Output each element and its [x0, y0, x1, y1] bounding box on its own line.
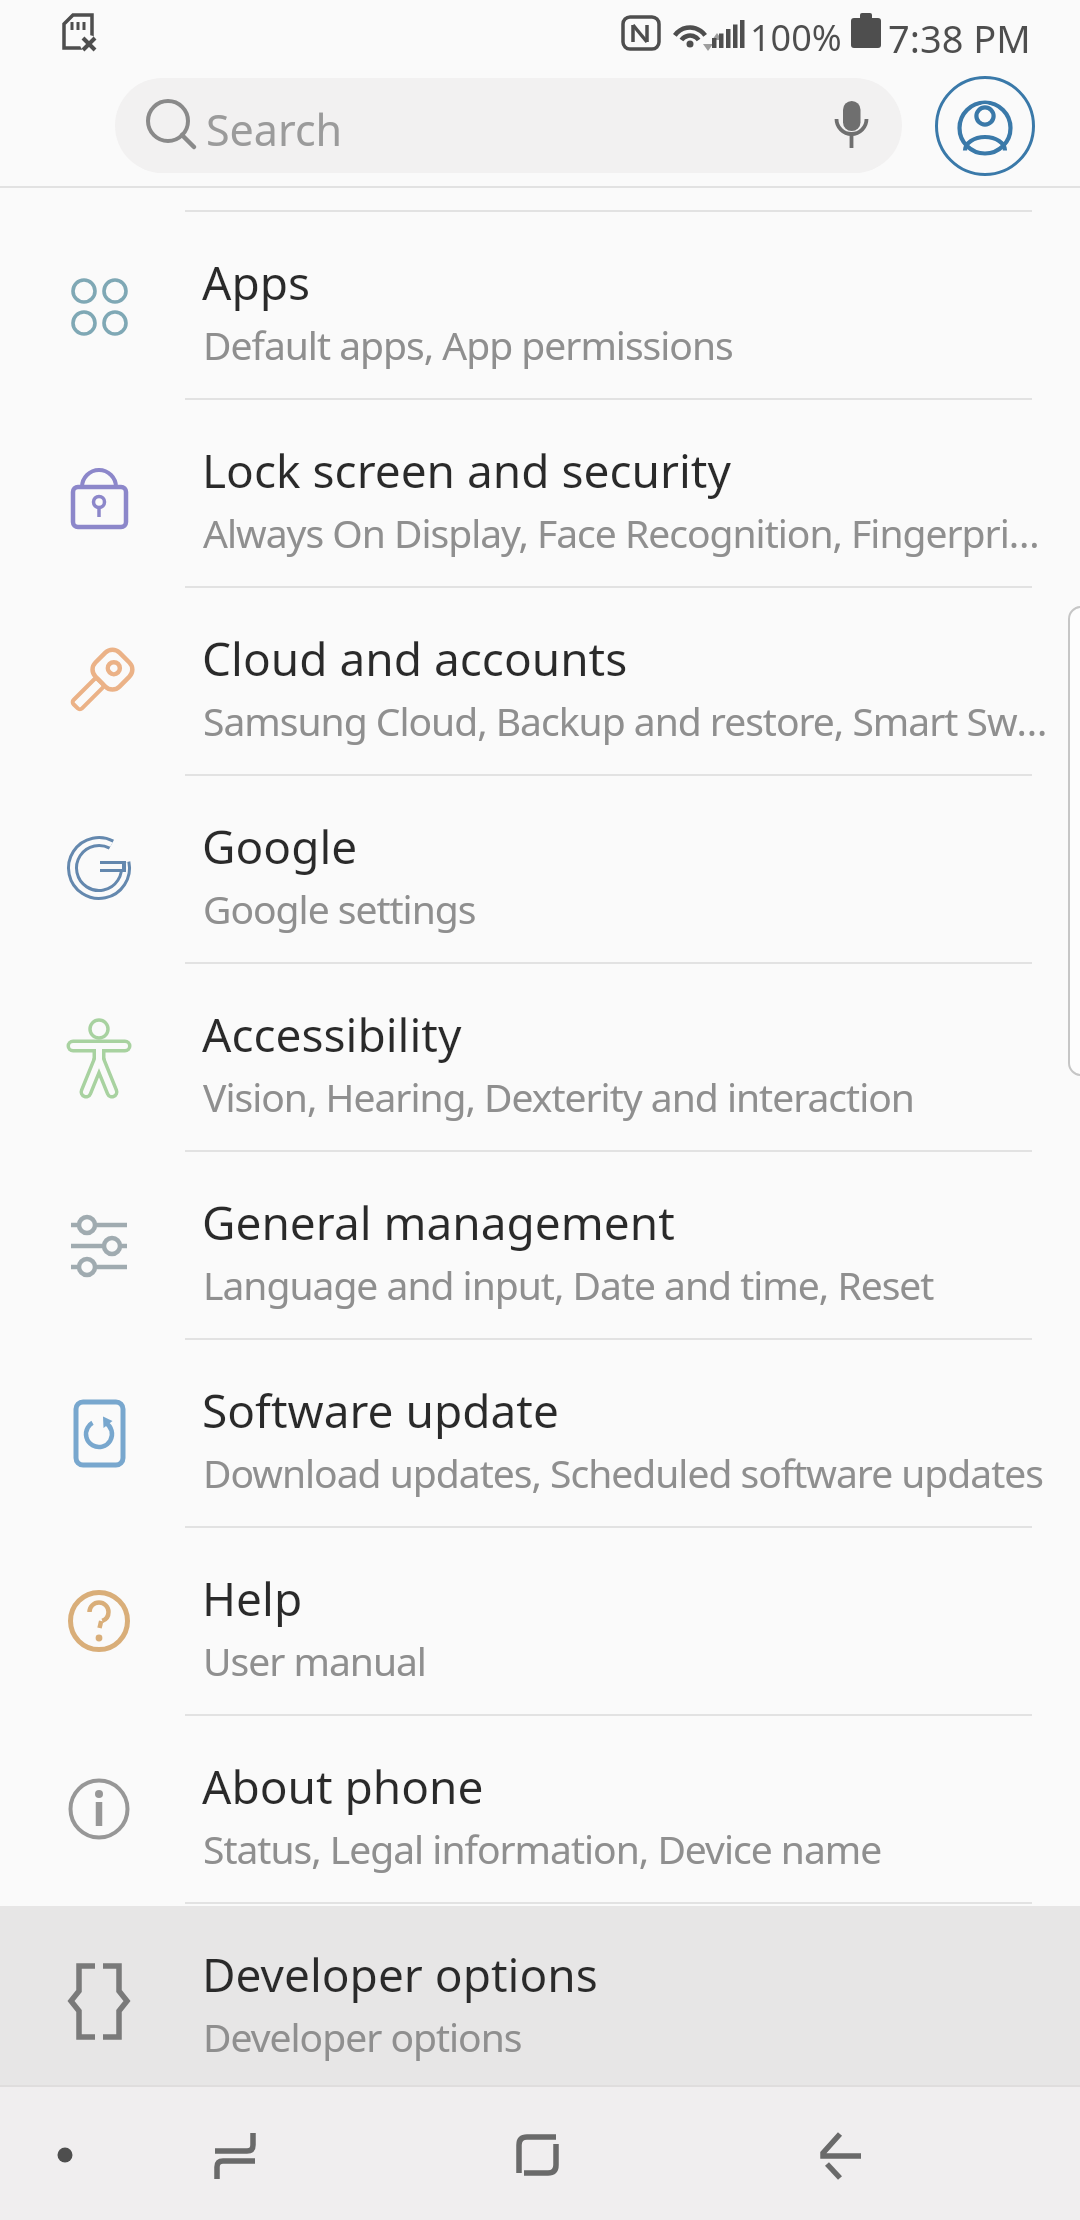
button[interactable] [0, 1714, 1080, 1902]
button[interactable] [0, 774, 1080, 962]
staticText: 100% [750, 13, 842, 62]
staticText: Google [202, 815, 358, 878]
button[interactable] [175, 2095, 295, 2215]
staticText: Vision, Hearing, Dexterity and interacti… [203, 1070, 914, 1123]
button[interactable] [0, 398, 1080, 586]
button[interactable] [778, 2095, 898, 2215]
staticText: Help [202, 1567, 303, 1630]
staticText: User manual [203, 1634, 426, 1687]
staticText: Developer options [202, 1943, 598, 2006]
button[interactable] [478, 2095, 598, 2215]
staticText: Samsung Cloud, Backup and restore, Smart… [203, 694, 1048, 747]
button[interactable] [0, 1526, 1080, 1714]
staticText: Google settings [203, 882, 476, 935]
staticText: Lock screen and security [202, 439, 731, 502]
staticText: 7:38 PM [888, 12, 1031, 64]
button[interactable] [0, 210, 1080, 398]
staticText: Always On Display, Face Recognition, Fin… [203, 506, 1048, 559]
button[interactable] [0, 1150, 1080, 1338]
staticText: General management [202, 1191, 675, 1254]
staticText: Developer options [203, 2010, 522, 2063]
button[interactable] [115, 78, 902, 173]
staticText: About phone [202, 1755, 484, 1818]
staticText: Cloud and accounts [202, 627, 628, 690]
button[interactable] [0, 586, 1080, 774]
staticText: Apps [202, 251, 311, 314]
staticText: Download updates, Scheduled software upd… [203, 1446, 1043, 1499]
button[interactable] [0, 1338, 1080, 1526]
button[interactable] [0, 1902, 1080, 2090]
button[interactable] [0, 962, 1080, 1150]
staticText: Status, Legal information, Device name [203, 1822, 882, 1875]
staticText: Software update [202, 1379, 559, 1442]
staticText: Language and input, Date and time, Reset [203, 1258, 934, 1311]
staticText: Default apps, App permissions [203, 318, 733, 371]
staticText: Accessibility [202, 1003, 462, 1066]
button[interactable] [936, 77, 1034, 175]
staticText: Search [206, 100, 343, 159]
